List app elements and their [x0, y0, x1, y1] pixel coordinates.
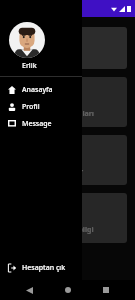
button[interactable]: Hesaplar	[8, 135, 127, 185]
button[interactable]: Recent apps	[97, 281, 115, 299]
button[interactable]: Uygulama bilgi	[8, 193, 127, 243]
button[interactable]: Hesaptan çık	[0, 259, 82, 276]
staticText: Hesaplar	[52, 167, 84, 177]
button[interactable]: Profile photo	[9, 22, 45, 58]
button[interactable]: Back	[20, 281, 38, 299]
staticText: Uygulama bilgi	[41, 225, 94, 235]
button[interactable]: Message	[0, 115, 82, 132]
button[interactable]: Anasayfa	[0, 81, 82, 98]
staticText: Erlik	[22, 61, 37, 71]
button[interactable]: Home	[59, 281, 77, 299]
staticText: Hesaptan çık	[22, 263, 66, 273]
staticText: Hoşgeldin bilgi	[14, 46, 66, 56]
staticText: Message	[22, 119, 52, 129]
button[interactable]: Sohbet Odaları	[8, 77, 127, 127]
button[interactable]: Profil	[0, 98, 82, 115]
staticText: uygulaması	[14, 56, 47, 64]
button[interactable]: Hoşgeldin bilgi	[8, 27, 127, 69]
staticText: Sohbet Odaları	[42, 109, 94, 119]
staticText: Profil	[22, 102, 40, 112]
staticText: Anasayfa	[22, 85, 53, 95]
